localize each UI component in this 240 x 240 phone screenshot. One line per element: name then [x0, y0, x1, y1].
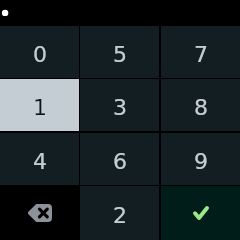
staticText: 2 [113, 203, 127, 229]
staticText: 3 [113, 95, 127, 121]
button[interactable]: 6 [80, 133, 159, 185]
button[interactable]: 5 [80, 26, 159, 78]
button[interactable]: 3 [80, 79, 159, 131]
button[interactable]: 2 [80, 186, 159, 240]
staticText: 7 [194, 42, 208, 68]
button[interactable]: Backspace [0, 186, 79, 240]
button[interactable]: 9 [161, 133, 240, 185]
button[interactable]: 1 [0, 79, 79, 131]
button[interactable]: 7 [161, 26, 240, 78]
staticText: 5 [113, 42, 127, 68]
button[interactable]: 0 [0, 26, 79, 78]
staticText: 8 [194, 95, 208, 121]
staticText: 9 [194, 149, 208, 175]
button[interactable]: 4 [0, 133, 79, 185]
button[interactable]: 8 [161, 79, 240, 131]
staticText: 4 [33, 149, 47, 175]
staticText: 6 [113, 149, 127, 175]
staticText: 1 [33, 95, 47, 121]
button[interactable]: Confirm [161, 186, 240, 240]
staticText: 0 [33, 42, 47, 68]
